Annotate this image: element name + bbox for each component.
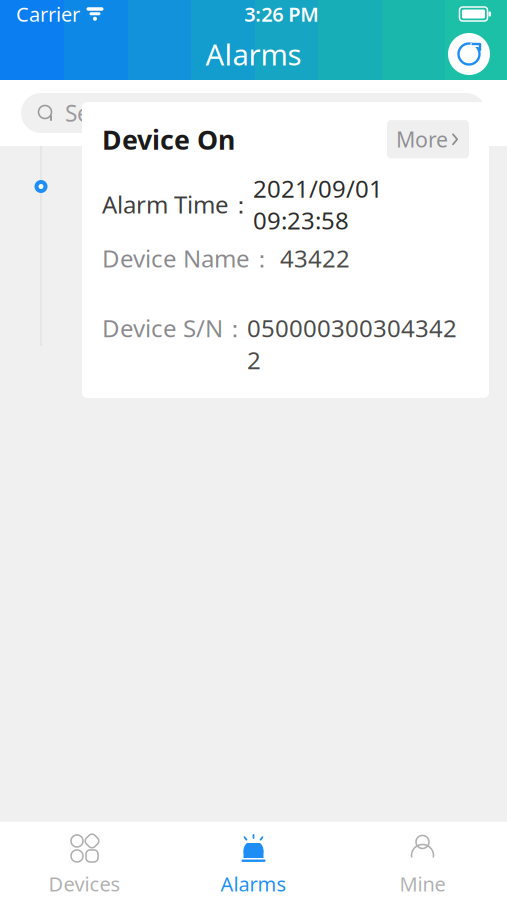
button[interactable]: Mine — [338, 821, 507, 900]
staticText: Device Name： — [102, 242, 274, 274]
button[interactable]: More — [387, 120, 469, 158]
staticText: Alarm Time： — [102, 188, 253, 220]
staticText: 3:26 PM — [244, 1, 319, 27]
staticText: Devices — [48, 870, 120, 897]
staticText: Search device S/N or device name — [65, 98, 424, 128]
staticText: 43422 — [274, 242, 350, 274]
staticText: Alarms — [220, 870, 286, 897]
button[interactable]: Alarms — [169, 821, 338, 900]
staticText: 2021/09/01 09:23:58 — [253, 172, 383, 236]
staticText: Carrier — [16, 1, 80, 27]
staticText: Mine — [399, 870, 445, 897]
staticText: Device S/N： — [102, 312, 247, 344]
staticText: More — [396, 125, 448, 153]
staticText: 0500003003043422 — [247, 280, 457, 376]
button[interactable]: Devices — [0, 821, 169, 900]
staticText: Alarms — [205, 34, 301, 73]
button[interactable]: Search device S/N or device name — [0, 80, 507, 146]
button[interactable]: Refresh — [443, 28, 495, 80]
staticText: Device On — [102, 122, 235, 157]
